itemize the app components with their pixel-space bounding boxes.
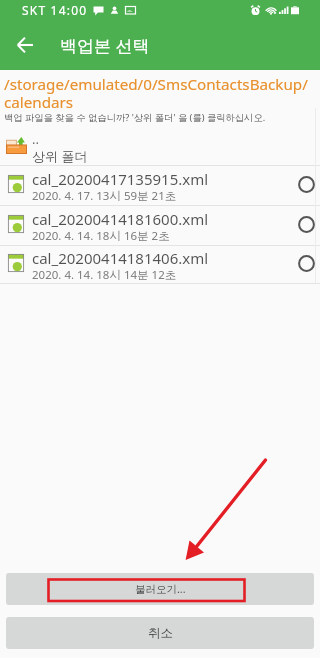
staticText: 2020. 4. 14. 18시 16분 2초 — [32, 228, 170, 244]
staticText: SKT 14:00 — [22, 2, 88, 18]
staticText: 취소 — [148, 625, 173, 641]
button[interactable]: Back — [8, 28, 42, 62]
staticText: .. — [32, 130, 39, 148]
staticText: 백업본 선택 — [60, 34, 150, 57]
staticText: 2020. 4. 17. 13시 59분 21초 — [32, 188, 177, 204]
button[interactable]: 불러오기... — [6, 573, 314, 605]
button[interactable]: cal_20200414181406.xml — [0, 246, 320, 283]
button[interactable]: Select backup — [293, 171, 319, 197]
button[interactable]: Select backup — [293, 211, 319, 237]
button[interactable]: Select backup — [293, 250, 319, 276]
button[interactable]: .. — [0, 126, 320, 165]
staticText: cal_20200414181600.xml — [32, 209, 209, 229]
staticText: cal_20200414181406.xml — [32, 248, 209, 268]
button[interactable]: cal_20200414181600.xml — [0, 206, 320, 245]
staticText: 2020. 4. 14. 18시 14분 12초 — [32, 267, 177, 283]
staticText: 백업 파일을 찾을 수 없습니까? '상위 폴더' 을 (를) 클릭하십시오. — [4, 111, 266, 124]
staticText: 불러오기... — [135, 582, 186, 596]
staticText: 상위 폴더 — [32, 147, 88, 165]
staticText: /storage/emulated/0/SmsContactsBackup/ca… — [4, 74, 320, 113]
staticText: cal_20200417135915.xml — [32, 169, 209, 189]
button[interactable]: 취소 — [6, 617, 314, 649]
button[interactable]: cal_20200417135915.xml — [0, 166, 320, 205]
